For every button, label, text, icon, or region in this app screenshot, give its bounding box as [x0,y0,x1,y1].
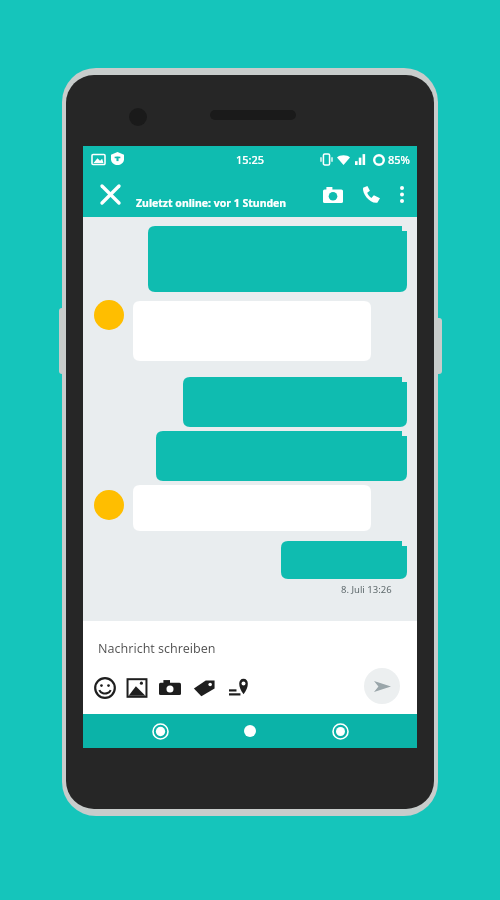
button[interactable]: Send [364,668,400,704]
button[interactable]: Close [91,172,129,217]
staticText: Zuletzt online: vor 1 Stunden [136,196,287,210]
button[interactable]: Gallery [126,677,148,699]
staticText: 8. Juli 13:26 [341,583,392,596]
staticText: 85% [388,152,410,167]
button[interactable]: 8. Juli 13:26 [83,217,417,621]
button[interactable]: Emoji [94,677,116,699]
button[interactable]: Recent apps [315,714,365,748]
button[interactable]: Take photo [159,677,181,699]
button[interactable]: Location [229,677,251,699]
button[interactable]: Back [135,714,185,748]
button[interactable]: Tag [193,677,215,699]
staticText: 15:25 [236,152,265,167]
button[interactable]: Nachricht schreiben [98,640,216,657]
button[interactable]: More options [386,172,417,217]
button[interactable]: Camera [313,172,353,217]
button[interactable]: Home [225,714,275,748]
button[interactable]: Call [351,172,391,217]
